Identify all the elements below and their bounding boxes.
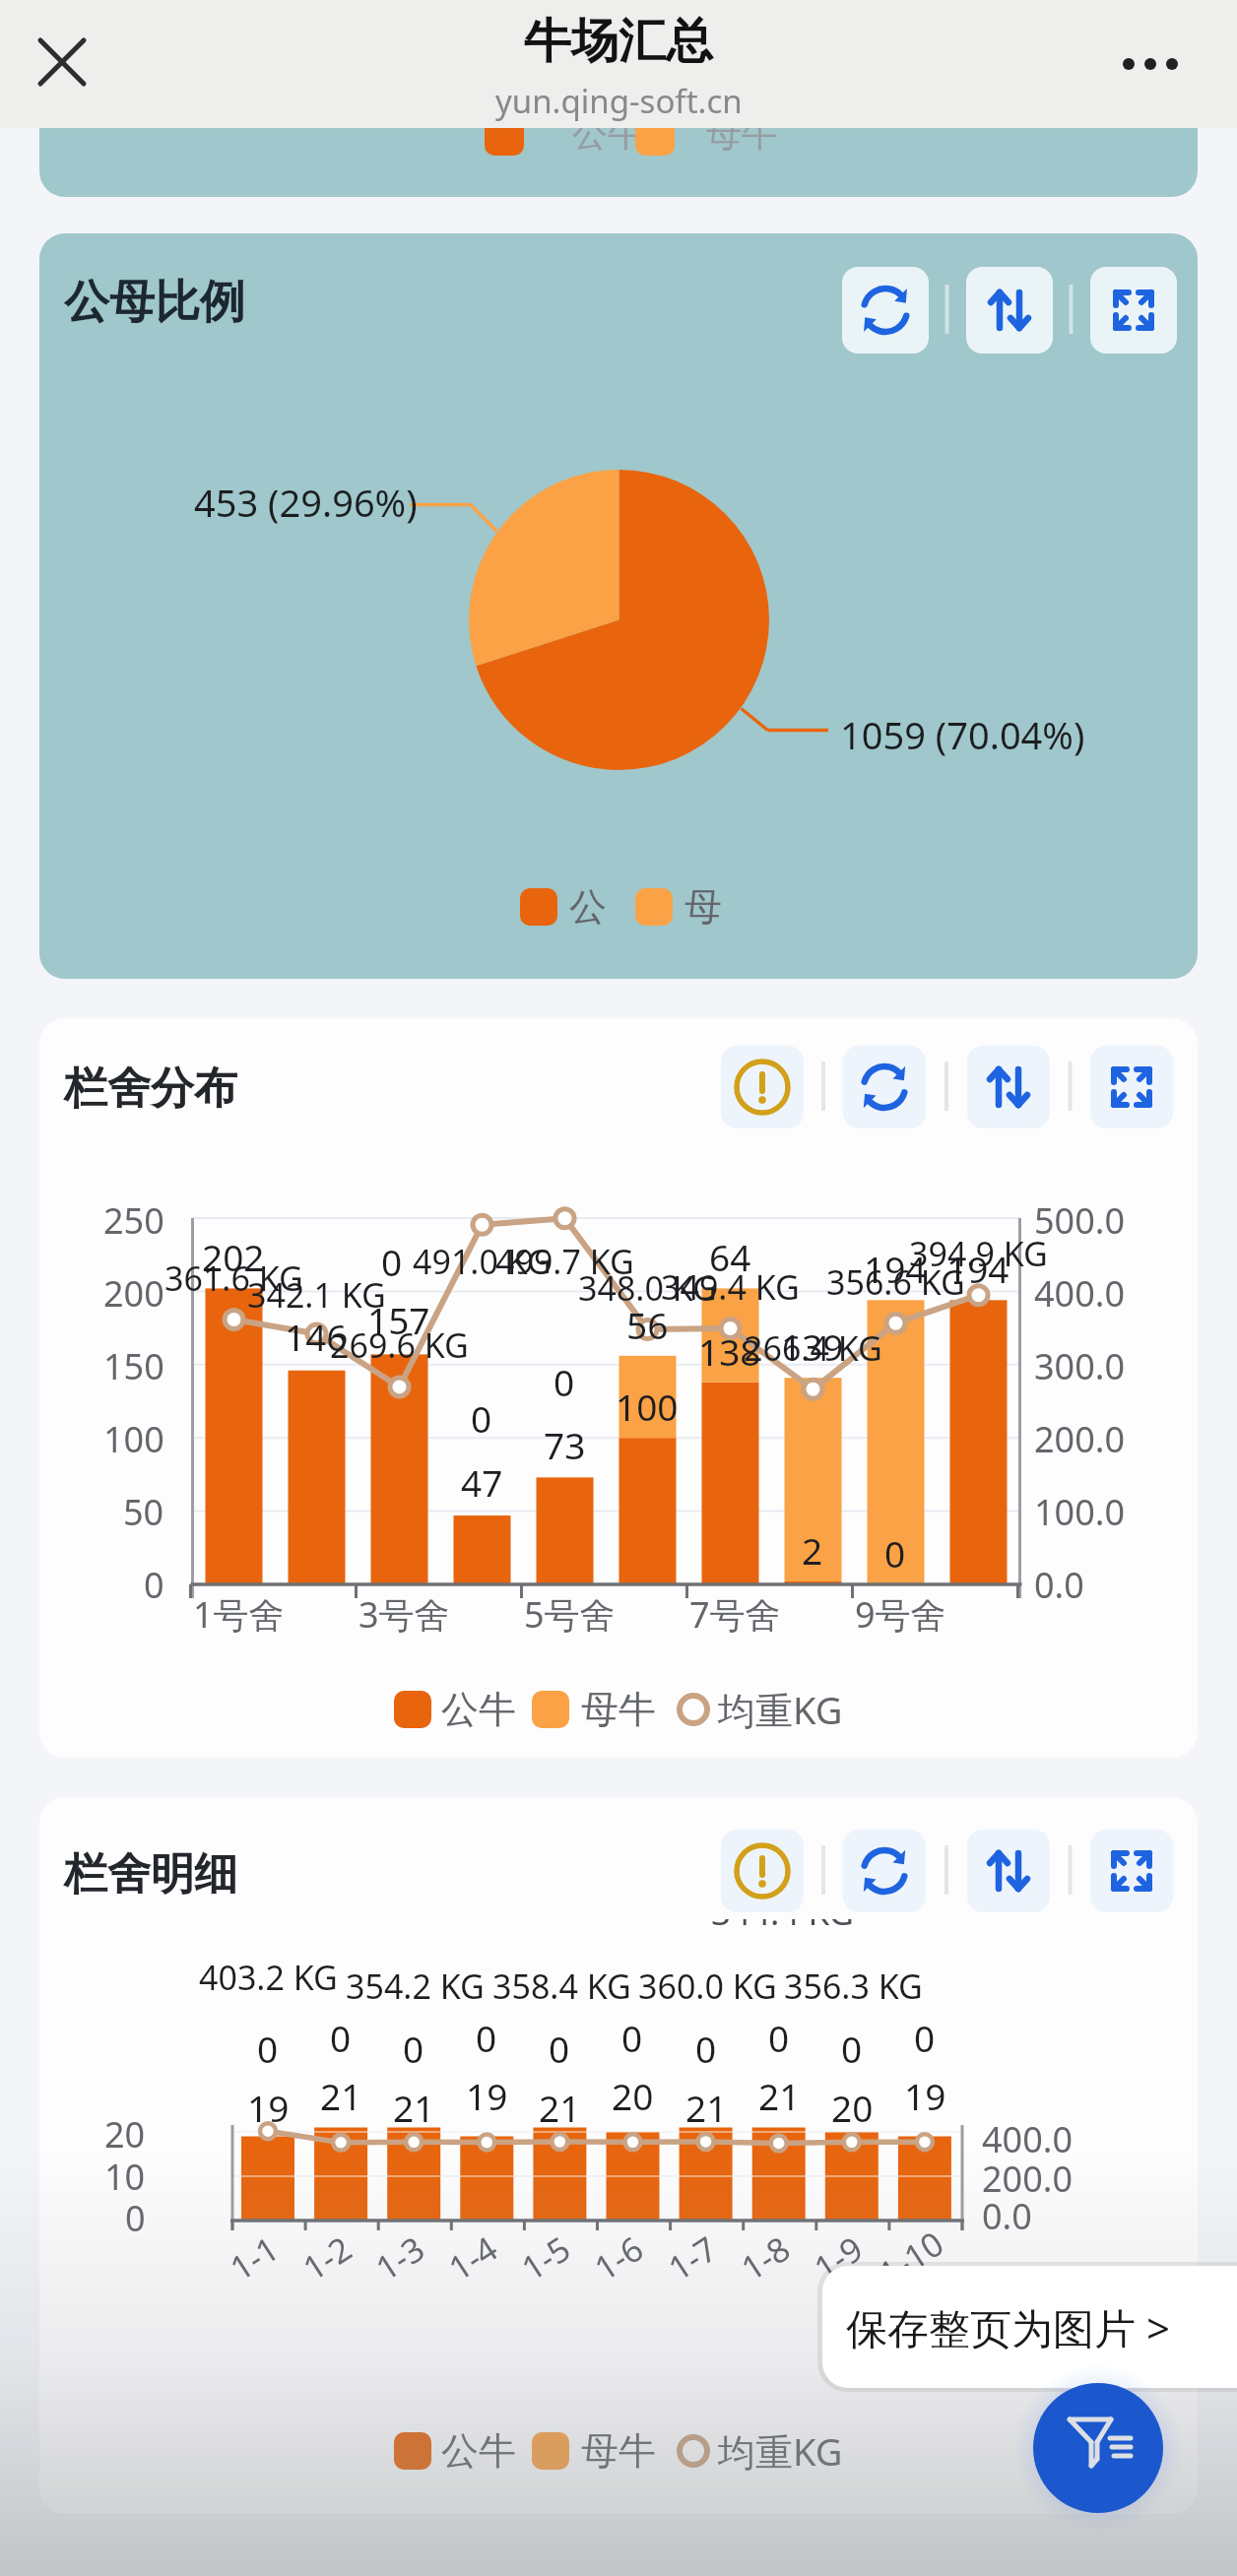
staticText: 56	[626, 1300, 669, 1349]
staticText: 9号舍	[855, 1590, 946, 1639]
staticText: 0	[330, 2013, 352, 2062]
staticText: 0	[381, 1237, 403, 1286]
staticText: 公	[569, 883, 607, 931]
staticText: 139	[781, 1321, 844, 1371]
staticText: 公牛	[572, 128, 643, 156]
staticText: 均重KG	[718, 1684, 843, 1735]
button[interactable]	[1033, 2383, 1163, 2513]
staticText: 100.0	[1034, 1488, 1126, 1536]
button[interactable]	[842, 267, 929, 354]
staticText: 母	[684, 883, 722, 931]
staticText: 194	[946, 1244, 1009, 1293]
staticText: 403.2 KG	[199, 1955, 338, 2000]
staticText: 344.4 KG	[711, 1919, 855, 1936]
staticText: 20	[831, 2083, 874, 2132]
staticText: 453 (29.96%)	[194, 477, 418, 528]
staticText: 19	[247, 2083, 290, 2132]
staticText: 360.0 KG	[638, 1964, 777, 2009]
staticText: 0	[914, 2013, 936, 2062]
button[interactable]	[28, 28, 97, 97]
staticText: 公母比例	[64, 274, 245, 331]
staticText: 356.6 KG	[826, 1259, 965, 1305]
staticText: 200.0	[982, 2155, 1074, 2203]
staticText: 47	[461, 1457, 503, 1507]
staticText: 394.9 KG	[909, 1231, 1048, 1276]
staticText: 250	[103, 1196, 164, 1245]
button[interactable]	[721, 1830, 804, 1912]
staticText: 1-4	[440, 2226, 506, 2290]
button[interactable]	[1090, 1046, 1173, 1128]
staticText: 5号舍	[524, 1590, 616, 1639]
staticText: 20	[612, 2071, 654, 2120]
staticText: 0	[471, 1393, 492, 1443]
staticText: 354.2 KG	[346, 1964, 485, 2009]
staticText: 157	[367, 1295, 430, 1344]
staticText: 0	[621, 2013, 643, 2062]
staticText: 300.0	[1034, 1342, 1126, 1390]
staticText: 0	[125, 2194, 146, 2242]
staticText: 21	[685, 2083, 728, 2132]
staticText: 20	[104, 2110, 146, 2158]
button[interactable]	[966, 267, 1053, 354]
staticText: 194	[864, 1244, 927, 1293]
staticText: 10	[104, 2153, 146, 2201]
staticText: 1-8	[732, 2226, 798, 2290]
staticText: 0	[768, 2013, 790, 2062]
staticText: 202	[202, 1232, 265, 1281]
staticText: yun.qing-soft.cn	[495, 79, 743, 123]
staticText: 400.0	[982, 2115, 1074, 2163]
staticText: 64	[709, 1232, 751, 1281]
button[interactable]: 保存整页为图片 >	[822, 2266, 1237, 2388]
staticText: 1-10	[870, 2220, 952, 2296]
staticText: 21	[393, 2083, 435, 2132]
staticText: 1059 (70.04%)	[840, 709, 1085, 760]
button[interactable]	[967, 1830, 1050, 1912]
button[interactable]	[967, 1046, 1050, 1128]
staticText: 146	[285, 1312, 348, 1361]
staticText: 0	[257, 2024, 279, 2073]
staticText: 0	[884, 1528, 906, 1578]
button[interactable]	[1090, 267, 1177, 354]
staticText: 356.3 KG	[784, 1964, 923, 2009]
staticText: 公牛	[441, 2427, 516, 2475]
staticText: 公牛	[441, 1686, 516, 1733]
staticText: 499.7 KG	[495, 1239, 634, 1284]
staticText: 348.0 KG	[578, 1265, 717, 1311]
staticText: 母牛	[581, 2427, 656, 2475]
staticText: 1-7	[659, 2226, 725, 2290]
staticText: 266.4 KG	[744, 1325, 882, 1371]
staticText: 349.4 KG	[661, 1264, 800, 1310]
staticText: 1-2	[294, 2226, 360, 2290]
staticText: 2	[802, 1525, 823, 1575]
staticText: 1-1	[221, 2226, 287, 2290]
staticText: 361.6 KG	[164, 1256, 303, 1301]
staticText: 母牛	[581, 1686, 656, 1733]
button[interactable]	[721, 1046, 804, 1128]
button[interactable]	[843, 1046, 926, 1128]
staticText: 200.0	[1034, 1415, 1126, 1463]
staticText: 3号舍	[358, 1590, 450, 1639]
button[interactable]	[1090, 1830, 1173, 1912]
staticText: 保存整页为图片 >	[846, 2299, 1170, 2355]
staticText: 0	[476, 2013, 497, 2062]
staticText: 0	[695, 2024, 717, 2073]
staticText: 1-6	[586, 2226, 651, 2290]
staticText: 0.0	[982, 2192, 1032, 2240]
staticText: 1-5	[513, 2226, 579, 2290]
staticText: 母牛	[706, 128, 777, 156]
staticText: 358.4 KG	[492, 1964, 631, 2009]
staticText: 150	[103, 1342, 164, 1390]
staticText: 269.6 KG	[330, 1322, 469, 1368]
staticText: 0.0	[1034, 1561, 1084, 1609]
staticText: 0	[841, 2024, 863, 2073]
staticText: 21	[539, 2083, 581, 2132]
button[interactable]	[843, 1830, 926, 1912]
staticText: 73	[544, 1420, 586, 1469]
staticText: 1-9	[805, 2226, 871, 2290]
staticText: 0	[403, 2024, 424, 2073]
staticText: 0	[553, 1357, 575, 1406]
staticText: 200	[103, 1269, 164, 1318]
button[interactable]	[1103, 34, 1198, 94]
staticText: 100	[103, 1415, 164, 1463]
staticText: 19	[466, 2071, 508, 2120]
